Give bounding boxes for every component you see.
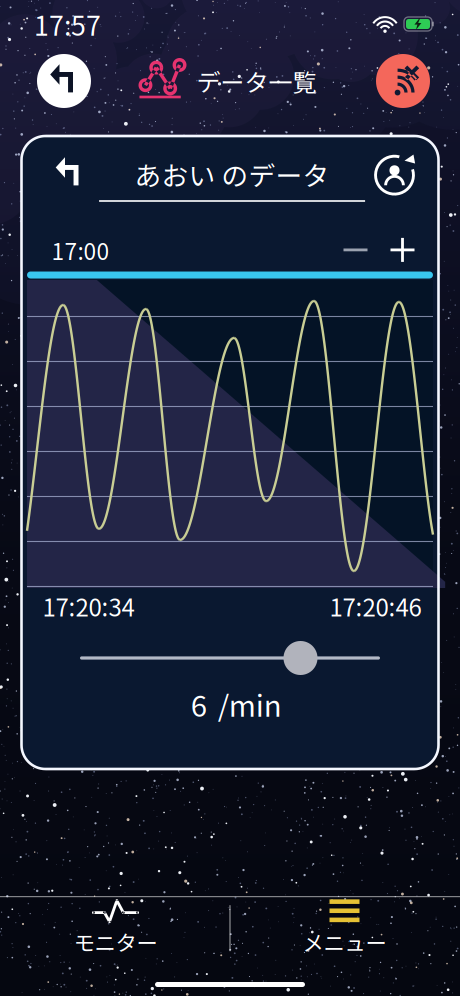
staticText: 17:57 <box>34 5 101 43</box>
button[interactable]: 戻る <box>33 50 95 112</box>
button[interactable]: スライダー <box>278 636 322 680</box>
button[interactable]: 減らす <box>331 224 379 275</box>
button[interactable]: ユーザーを更新 <box>366 145 422 201</box>
staticText: あおい のデータ <box>135 155 330 193</box>
staticText: モニター <box>73 926 157 957</box>
staticText: 17:20:34 <box>42 589 134 623</box>
button[interactable]: オフライン <box>372 50 434 112</box>
staticText: 17:00 <box>51 234 109 266</box>
staticText: /min <box>218 683 282 725</box>
staticText: 6 <box>191 683 207 725</box>
button[interactable]: モニター <box>1 897 230 959</box>
button[interactable]: メニュー <box>230 897 459 959</box>
staticText: データ一覧 <box>196 64 316 98</box>
staticText: 17:20:46 <box>329 589 421 623</box>
staticText: メニュー <box>302 926 386 957</box>
button[interactable]: 増やす <box>378 224 426 275</box>
button[interactable]: 戻る <box>42 147 96 201</box>
